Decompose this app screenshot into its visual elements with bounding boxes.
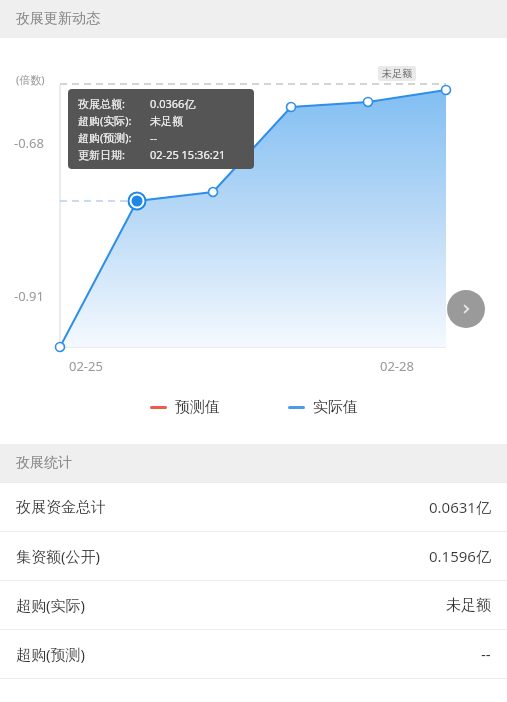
staticText: 0.0631亿 [429, 497, 491, 517]
staticText: 02-28 [380, 357, 414, 375]
staticText: 超购(预测) [16, 644, 86, 664]
staticText: 孜展总额: [78, 96, 125, 111]
button[interactable]: 超购(实际) [0, 580, 507, 629]
staticText: -- [150, 130, 158, 145]
staticText: 孜展资金总计 [16, 498, 106, 517]
staticText: 更新日期: [78, 147, 125, 162]
button[interactable]: 超购(预测) [0, 629, 507, 678]
staticText: 孜展更新动态 [16, 10, 100, 28]
button[interactable]: 预测值 [150, 398, 220, 417]
staticText: -0.91 [14, 287, 44, 305]
staticText: 0.0366亿 [150, 96, 196, 111]
staticText: -- [481, 644, 491, 664]
staticText: 未足额 [382, 67, 412, 80]
staticText: 未足额 [446, 596, 491, 615]
staticText: 孜展统计 [16, 454, 72, 472]
staticText: 预测值 [175, 398, 220, 417]
staticText: (倍数) [16, 72, 45, 87]
button[interactable]: 集资额(公开) [0, 531, 507, 580]
button[interactable]: Next [447, 290, 485, 328]
staticText: 超购(预测): [78, 130, 132, 145]
staticText: 02-25 [69, 357, 103, 375]
button[interactable]: 实际值 [288, 398, 358, 417]
button[interactable]: 孜展资金总计 [0, 482, 507, 531]
staticText: 02-25 15:36:21 [150, 147, 226, 162]
staticText: 0.1596亿 [429, 546, 491, 566]
staticText: 实际值 [313, 398, 358, 417]
staticText: 超购(实际) [16, 595, 86, 615]
staticText: 未足额 [150, 114, 183, 128]
staticText: -0.68 [14, 134, 44, 152]
staticText: 集资额(公开) [16, 546, 101, 566]
staticText: 超购(实际): [78, 113, 132, 128]
